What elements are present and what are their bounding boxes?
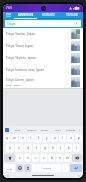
staticText: s <box>18 146 20 150</box>
button[interactable]: Tokyo harbour view, Japan <box>3 64 83 76</box>
button[interactable]: Photo thumbnail <box>71 53 80 63</box>
button[interactable]: x <box>24 154 31 162</box>
button[interactable]: Tokyo Skytree, Japan <box>3 52 83 64</box>
staticText: GIFs <box>15 128 21 131</box>
button[interactable]: g <box>41 144 48 152</box>
staticText: ?123 <box>7 167 13 170</box>
button[interactable]: Clear search <box>74 21 79 26</box>
button[interactable]: w <box>11 134 18 142</box>
button[interactable]: Photo thumbnail <box>71 77 80 87</box>
button[interactable]: f <box>33 144 40 152</box>
staticText: e <box>22 136 24 140</box>
staticText: v <box>43 156 45 160</box>
staticText: j <box>60 146 61 150</box>
button[interactable]: Tokyo Tower, Japan <box>3 40 83 52</box>
button[interactable]: ?123 <box>4 164 15 172</box>
button[interactable]: TIMELINE <box>60 12 83 18</box>
button[interactable]: e <box>19 134 26 142</box>
button[interactable]: v <box>40 154 47 162</box>
button[interactable]: j <box>57 144 64 152</box>
staticText: Themes <box>66 128 76 131</box>
button[interactable]: k <box>65 144 72 152</box>
button[interactable]: English <box>32 164 61 172</box>
staticText: Clips <box>55 128 61 131</box>
button[interactable]: m <box>64 154 71 162</box>
button[interactable]: h <box>49 144 56 152</box>
staticText: o <box>70 136 72 140</box>
button[interactable]: n <box>56 154 63 162</box>
staticText: Stickers <box>27 128 37 131</box>
button[interactable]: ADVENTURE <box>14 12 37 18</box>
staticText: Tokyo harbour view, Japan <box>6 68 45 72</box>
button[interactable]: Stickers <box>25 126 38 133</box>
button[interactable]: Tokyo Dome, Japan <box>3 76 83 88</box>
staticText: ADVENTURE <box>18 13 34 17</box>
staticText: Tokyo Tower, Japan <box>6 44 34 48</box>
button[interactable]: Clips <box>51 126 64 133</box>
button[interactable]: . <box>62 164 69 172</box>
button[interactable]: Shift <box>4 154 15 162</box>
staticText: w <box>13 136 16 140</box>
button[interactable]: d <box>24 144 32 152</box>
staticText: 7:05 <box>6 6 12 10</box>
staticText: c <box>35 156 37 160</box>
button[interactable]: Enter <box>70 164 82 172</box>
staticText: TIMELINE <box>66 13 78 17</box>
button[interactable]: Emoji <box>16 164 23 172</box>
button[interactable]: Keyboard settings <box>5 128 9 132</box>
staticText: f <box>36 146 38 150</box>
button[interactable]: i <box>59 134 66 142</box>
staticText: Tokyo Station, Japan <box>6 32 36 36</box>
staticText: y <box>46 136 48 140</box>
button[interactable]: q <box>4 134 10 142</box>
staticText: n <box>59 156 61 160</box>
button[interactable]: More options <box>77 126 81 133</box>
staticText: a <box>9 146 11 150</box>
button[interactable]: p <box>75 134 82 142</box>
staticText: ⋮ <box>78 128 81 131</box>
button[interactable]: GIFs <box>11 126 25 133</box>
staticText: z <box>19 156 21 160</box>
staticText: Japan · Tokyo <box>6 83 21 86</box>
button[interactable]: Tokyo <box>5 20 81 27</box>
staticText: g <box>44 146 46 150</box>
button[interactable]: a <box>6 144 14 152</box>
button[interactable]: Themes <box>64 126 77 133</box>
button[interactable]: y <box>43 134 50 142</box>
staticText: u <box>54 136 56 140</box>
staticText: h <box>52 146 54 150</box>
button[interactable]: ROMANCE <box>37 12 60 18</box>
button[interactable]: b <box>48 154 55 162</box>
button[interactable]: r <box>27 134 34 142</box>
button[interactable]: Home <box>32 175 54 176</box>
button[interactable]: Emoji <box>38 126 51 133</box>
button[interactable]: t <box>35 134 42 142</box>
button[interactable]: Photo thumbnail <box>71 65 80 75</box>
staticText: k <box>68 146 70 150</box>
staticText: i <box>62 136 63 140</box>
button[interactable]: Tokyo Station, Japan <box>3 28 83 40</box>
button[interactable]: Backspace <box>72 154 82 162</box>
staticText: l <box>76 146 77 150</box>
button[interactable]: s <box>15 144 23 152</box>
staticText: Emoji <box>41 128 48 131</box>
button[interactable]: Photo thumbnail <box>71 41 80 51</box>
button[interactable]: o <box>67 134 74 142</box>
staticText: b <box>51 156 53 160</box>
staticText: m <box>66 156 69 160</box>
staticText: t <box>38 136 40 140</box>
button[interactable]: u <box>51 134 58 142</box>
button[interactable]: Photo thumbnail <box>71 29 80 39</box>
staticText: ROMANCE <box>42 13 55 17</box>
button[interactable]: c <box>32 154 39 162</box>
button[interactable]: l <box>73 144 80 152</box>
button[interactable]: Hide keyboard <box>77 174 80 177</box>
button[interactable]: z <box>16 154 23 162</box>
button[interactable]: Back <box>6 174 9 177</box>
button[interactable]: Menu <box>3 12 14 18</box>
staticText: r <box>30 136 32 140</box>
staticText: Tokyo Skytree, Japan <box>6 56 36 60</box>
staticText: . <box>65 166 66 170</box>
staticText: English <box>43 167 51 170</box>
button[interactable]: Voice input <box>24 164 31 172</box>
